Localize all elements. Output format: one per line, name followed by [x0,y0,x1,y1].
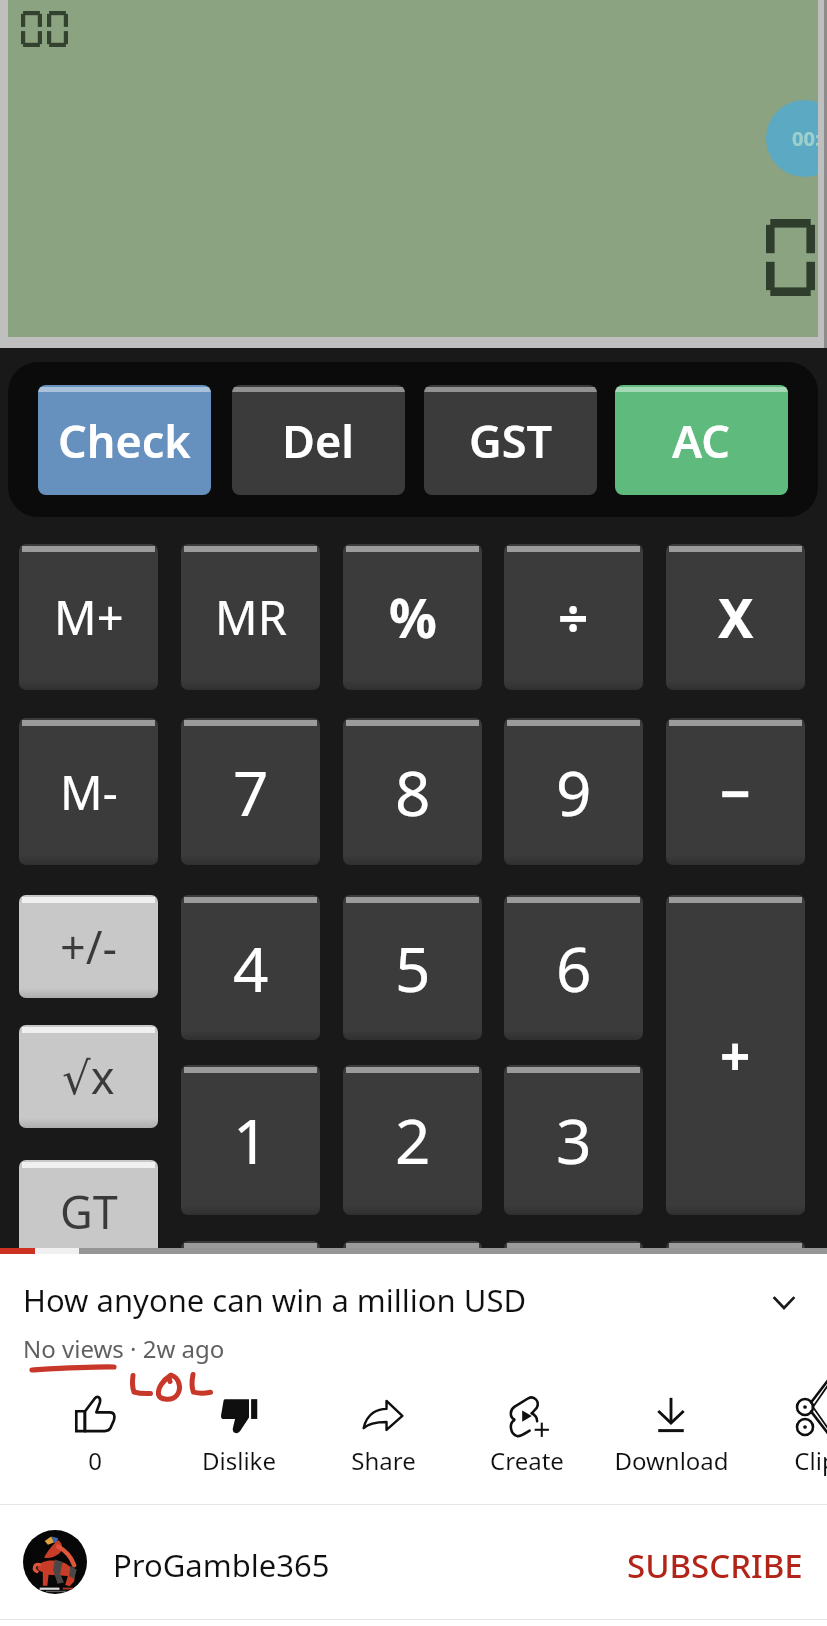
button[interactable]: 4 [181,895,320,1040]
button[interactable]: Del [232,385,405,495]
button[interactable]: Clip [743,1387,827,1504]
staticText: Download [614,1444,729,1477]
button[interactable]: Check [38,385,211,495]
button[interactable] [504,1241,643,1248]
button[interactable]: X [666,544,805,690]
button[interactable]: +/- [19,895,158,998]
button[interactable] [666,1241,805,1248]
button[interactable]: − [666,718,805,865]
staticText: GT [60,1181,118,1242]
staticText: + [720,1019,751,1091]
button[interactable]: ProGamble365 [0,1505,827,1619]
staticText: 6 [556,926,592,1010]
button[interactable]: 8 [343,718,482,865]
button[interactable]: + [666,895,805,1215]
staticText: Clip [794,1444,827,1477]
staticText: √x [62,1046,115,1107]
staticText: 2 [395,1098,431,1182]
button[interactable]: M- [19,718,158,865]
button[interactable]: SUBSCRIBE [617,1533,813,1598]
staticText: 4 [233,926,269,1010]
staticText: AC [672,410,731,471]
staticText: Del [282,410,355,471]
button[interactable]: 1 [181,1065,320,1215]
staticText: Create [490,1444,564,1477]
button[interactable]: 5 [343,895,482,1040]
button[interactable]: Expand description [752,1265,816,1329]
button[interactable]: GST [424,385,597,495]
staticText: GST [469,410,553,471]
staticText: 0 [88,1444,102,1477]
button[interactable]: 7 [181,718,320,865]
staticText: ProGamble365 [113,1544,330,1586]
button[interactable] [181,1241,320,1248]
staticText: X [718,581,754,653]
staticText: How anyone can win a million USD [23,1279,527,1321]
button[interactable]: AC [615,385,788,495]
staticText: 1 [233,1098,269,1182]
staticText: − [720,756,751,828]
button[interactable]: Download [599,1387,743,1504]
button[interactable]: Dislike [167,1387,311,1504]
staticText: +/- [60,916,117,977]
button[interactable]: Create [455,1387,599,1504]
staticText: M- [60,760,118,824]
staticText: SUBSCRIBE [627,1543,803,1588]
button[interactable]: 2 [343,1065,482,1215]
staticText: MR [215,585,287,649]
button[interactable]: 6 [504,895,643,1040]
button[interactable]: % [343,544,482,690]
button[interactable]: 3 [504,1065,643,1215]
staticText: 7 [233,750,269,834]
button[interactable]: M+ [19,544,158,690]
staticText: M+ [54,585,124,649]
button[interactable]: √x [19,1025,158,1128]
staticText: 8 [395,750,431,834]
button[interactable]: 0 [23,1387,167,1504]
staticText: Check [58,410,191,471]
staticText: Share [351,1444,416,1477]
staticText: 5 [395,926,431,1010]
staticText: 3 [556,1098,592,1182]
staticText: 9 [556,750,592,834]
staticText: ÷ [558,581,589,653]
button[interactable]: ÷ [504,544,643,690]
button[interactable]: Share [311,1387,455,1504]
staticText: 00:28 [792,125,818,152]
button[interactable]: GT [19,1160,158,1248]
staticText: No views · 2w ago [23,1332,225,1365]
button[interactable] [343,1241,482,1248]
staticText: Dislike [202,1444,276,1477]
staticText: % [389,581,437,653]
button[interactable]: MR [181,544,320,690]
button[interactable]: 9 [504,718,643,865]
